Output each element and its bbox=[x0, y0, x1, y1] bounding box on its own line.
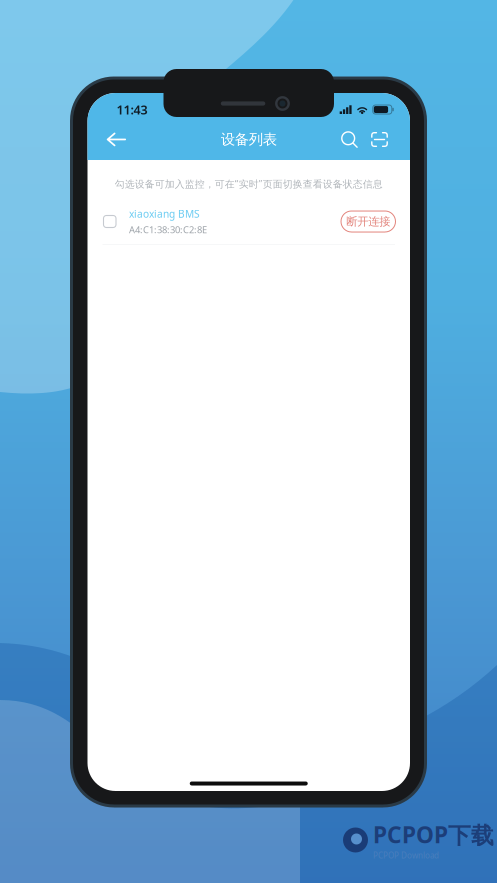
button[interactable]: xiaoxiang BMS bbox=[87, 199, 410, 244]
staticText: A4:C1:38:30:C2:8E bbox=[129, 223, 207, 236]
staticText: 勾选设备可加入监控，可在“实时”页面切换查看设备状态信息 bbox=[115, 177, 383, 190]
staticText: PCPOP下载 bbox=[373, 819, 494, 850]
button[interactable]: Search bbox=[335, 123, 364, 156]
staticText: 断开连接 bbox=[346, 214, 390, 229]
button[interactable]: Back bbox=[87, 123, 136, 156]
staticText: PCPOP Download bbox=[373, 850, 439, 861]
staticText: 11:43 bbox=[116, 101, 147, 118]
button[interactable]: Scan QR code bbox=[364, 123, 410, 156]
staticText: xiaoxiang BMS bbox=[129, 207, 200, 221]
staticText: 设备列表 bbox=[221, 130, 277, 148]
